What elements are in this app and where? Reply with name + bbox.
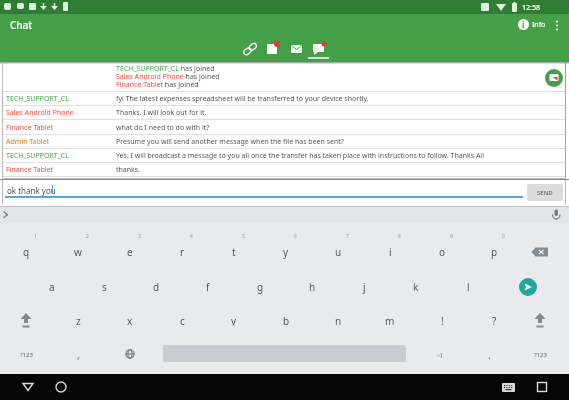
- button[interactable]: t: [216, 239, 252, 265]
- staticText: m: [385, 314, 395, 328]
- button[interactable]: [309, 40, 329, 58]
- staticText: d: [153, 280, 160, 294]
- button[interactable]: w: [60, 239, 96, 265]
- staticText: i: [522, 19, 525, 30]
- staticText: b: [283, 314, 290, 328]
- button[interactable]: [519, 278, 537, 296]
- staticText: 6: [294, 233, 297, 240]
- button[interactable]: [240, 40, 260, 58]
- button[interactable]: [496, 376, 520, 398]
- button[interactable]: [524, 239, 560, 265]
- button[interactable]: TECH_SUPPORT_CL: [3, 92, 565, 106]
- staticText: Thanks. I will look out for it.: [116, 108, 207, 118]
- button[interactable]: n: [320, 308, 356, 334]
- button[interactable]: x: [112, 308, 148, 334]
- staticText: !: [441, 314, 444, 328]
- button[interactable]: i: [514, 17, 554, 33]
- staticText: Sales Android Phone has joined: [116, 72, 220, 82]
- staticText: fyi The latest expenses spreadsheet will…: [116, 94, 369, 104]
- staticText: TECH_SUPPORT_CL: [6, 94, 69, 104]
- button[interactable]: [12, 308, 40, 334]
- button[interactable]: ?123: [8, 342, 44, 368]
- staticText: j: [363, 280, 366, 294]
- button[interactable]: Finance Tablet: [3, 120, 565, 135]
- button[interactable]: ?: [476, 308, 512, 334]
- button[interactable]: q: [8, 239, 44, 265]
- button[interactable]: [526, 308, 554, 334]
- staticText: x: [127, 314, 133, 328]
- button[interactable]: i: [372, 239, 408, 265]
- staticText: v: [231, 314, 237, 328]
- staticText: t: [232, 245, 236, 259]
- button[interactable]: c: [164, 308, 200, 334]
- button[interactable]: .: [471, 342, 507, 368]
- button[interactable]: [16, 376, 40, 398]
- button[interactable]: ,: [60, 342, 96, 368]
- staticText: y: [283, 245, 289, 259]
- staticText: TECH_SUPPORT_CL has joined: [116, 64, 215, 74]
- staticText: u: [335, 245, 342, 259]
- button[interactable]: y: [268, 239, 304, 265]
- button[interactable]: Finance Tablet: [3, 163, 565, 177]
- button[interactable]: d: [138, 274, 174, 300]
- button[interactable]: r: [164, 239, 200, 265]
- staticText: Admin Tablet: [6, 137, 50, 147]
- staticText: 5: [242, 233, 245, 240]
- button[interactable]: TECH_SUPPORT_CL has joined: [3, 63, 565, 92]
- staticText: ok thank you: [7, 185, 56, 196]
- button[interactable]: !: [424, 308, 460, 334]
- button[interactable]: [551, 16, 563, 34]
- staticText: f: [206, 280, 210, 294]
- staticText: 1: [34, 233, 37, 240]
- staticText: s: [102, 280, 107, 294]
- button[interactable]: ?123: [522, 342, 558, 368]
- button[interactable]: p: [476, 239, 512, 265]
- button[interactable]: a: [34, 274, 70, 300]
- button[interactable]: s: [86, 274, 122, 300]
- button[interactable]: [287, 40, 307, 58]
- button[interactable]: b: [268, 308, 304, 334]
- staticText: c: [180, 314, 185, 328]
- staticText: Finance Tablet: [6, 165, 53, 175]
- staticText: g: [257, 280, 264, 294]
- button[interactable]: v: [216, 308, 252, 334]
- button[interactable]: [530, 376, 554, 398]
- button[interactable]: [264, 40, 284, 58]
- button[interactable]: k: [398, 274, 434, 300]
- button[interactable]: [545, 69, 563, 87]
- button[interactable]: SEND: [527, 184, 563, 201]
- button[interactable]: m: [372, 308, 408, 334]
- staticText: z: [76, 314, 81, 328]
- staticText: SEND: [537, 189, 553, 197]
- staticText: Finance Tablet: [6, 123, 53, 133]
- button[interactable]: f: [190, 274, 226, 300]
- staticText: :-): [437, 351, 443, 359]
- staticText: .: [488, 348, 491, 362]
- staticText: TECH_SUPPORT_CL: [6, 151, 69, 161]
- button[interactable]: e: [112, 239, 148, 265]
- button[interactable]: [117, 342, 143, 368]
- staticText: l: [467, 280, 470, 294]
- staticText: 2: [86, 233, 89, 240]
- button[interactable]: o: [424, 239, 460, 265]
- button[interactable]: u: [320, 239, 356, 265]
- button[interactable]: h: [294, 274, 330, 300]
- button[interactable]: g: [242, 274, 278, 300]
- button[interactable]: :-): [422, 342, 458, 368]
- button[interactable]: TECH_SUPPORT_CL: [3, 149, 565, 163]
- staticText: i: [389, 245, 392, 259]
- staticText: n: [335, 314, 342, 328]
- button[interactable]: l: [450, 274, 486, 300]
- staticText: h: [309, 280, 316, 294]
- staticText: w: [74, 245, 82, 259]
- button[interactable]: [49, 376, 73, 398]
- staticText: r: [180, 245, 185, 259]
- staticText: p: [491, 245, 498, 259]
- button[interactable]: Admin Tablet: [3, 135, 565, 149]
- button[interactable]: j: [346, 274, 382, 300]
- staticText: Presume you will send another message wh…: [116, 137, 344, 147]
- button[interactable]: Sales Android Phone: [3, 106, 565, 120]
- staticText: o: [439, 245, 446, 259]
- button[interactable]: z: [60, 308, 96, 334]
